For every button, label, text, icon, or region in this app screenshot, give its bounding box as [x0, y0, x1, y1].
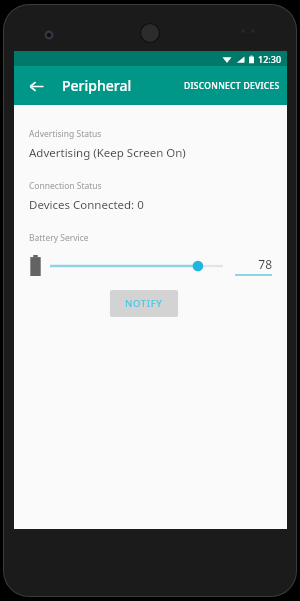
staticText: Advertising (Keep Screen On)	[29, 145, 186, 161]
staticText: Advertising Status	[29, 128, 102, 140]
button[interactable]: NOTIFY	[110, 290, 178, 317]
button[interactable]: 78	[235, 256, 272, 276]
staticText: Devices Connected: 0	[29, 197, 144, 213]
staticText: DISCONNECT DEVICES	[184, 80, 280, 92]
staticText: 12:30	[258, 53, 282, 65]
staticText: Connection Status	[29, 180, 102, 192]
button[interactable]: Battery level slider	[50, 256, 223, 276]
button[interactable]: DISCONNECT DEVICES	[177, 66, 287, 105]
button[interactable]: Back	[22, 72, 50, 100]
staticText: NOTIFY	[125, 297, 163, 310]
staticText: Peripheral	[62, 76, 132, 95]
staticText: 78	[235, 256, 272, 272]
staticText: Battery Service	[29, 232, 89, 244]
